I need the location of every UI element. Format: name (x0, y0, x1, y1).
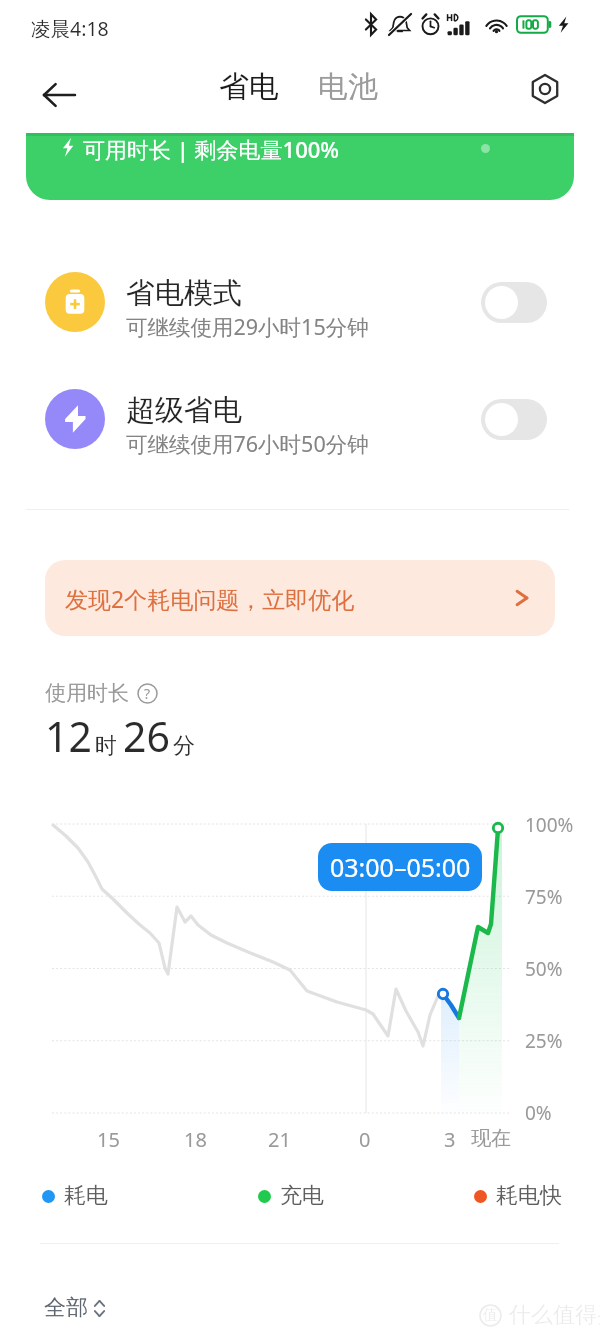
staticText: 21 (268, 1126, 291, 1153)
staticText: 可用时长 | 剩余电量100% (83, 134, 340, 164)
staticText: 耗电 (64, 1182, 108, 1210)
staticText: 耗电快 (496, 1182, 562, 1210)
staticText: 0% (525, 1100, 552, 1126)
staticText: 省电 (219, 68, 279, 106)
staticText: 凌晨4:18 (31, 15, 109, 42)
button[interactable]: 省电模式 (481, 282, 547, 323)
staticText: 什么值得买 (509, 1301, 600, 1329)
staticText: 省电模式 (126, 275, 242, 312)
staticText: 可继续使用76小时50分钟 (126, 429, 369, 458)
button[interactable]: 省电模式 (0, 258, 600, 346)
staticText: 3 (444, 1126, 456, 1153)
button[interactable]: 超级省电 (0, 375, 600, 463)
button[interactable]: 耗电快 (474, 1182, 562, 1210)
staticText: 100% (525, 812, 574, 838)
button[interactable]: 超级省电 (481, 399, 547, 440)
staticText: 75% (525, 884, 563, 910)
staticText: 15 (97, 1126, 120, 1153)
staticText: 18 (184, 1126, 207, 1153)
staticText: 50% (525, 956, 563, 982)
staticText: 03:00–05:00 (330, 850, 471, 884)
button[interactable]: 设置 (522, 66, 568, 112)
staticText: 使用时长 (45, 680, 129, 706)
staticText: 超级省电 (126, 392, 242, 429)
staticText: 26 (123, 708, 170, 764)
button[interactable]: 可用时长 | 剩余电量100% (26, 133, 574, 200)
staticText: 可继续使用29小时15分钟 (126, 312, 369, 341)
staticText: 12 (45, 708, 92, 764)
staticText: 电池 (318, 68, 378, 106)
staticText: 时 (95, 732, 117, 760)
staticText: ? (144, 684, 151, 703)
button[interactable]: 耗电 (42, 1182, 108, 1210)
staticText: 全部 (44, 1294, 88, 1322)
staticText: 值 (483, 1306, 498, 1325)
button[interactable]: 帮助 (137, 683, 158, 704)
staticText: 发现2个耗电问题，立即优化 (65, 583, 355, 614)
staticText: 25% (525, 1028, 563, 1054)
button[interactable]: 充电 (258, 1182, 324, 1210)
button[interactable]: 发现2个耗电问题，立即优化 (45, 560, 555, 636)
button[interactable]: 全部 (44, 1294, 105, 1322)
staticText: 充电 (280, 1182, 324, 1210)
staticText: 现在 (471, 1126, 511, 1151)
staticText: 分 (173, 732, 195, 760)
button[interactable]: 省电 (210, 61, 288, 113)
button[interactable]: 返回 (32, 68, 86, 122)
button[interactable]: 电池 (309, 61, 387, 113)
staticText: 0 (359, 1126, 371, 1153)
